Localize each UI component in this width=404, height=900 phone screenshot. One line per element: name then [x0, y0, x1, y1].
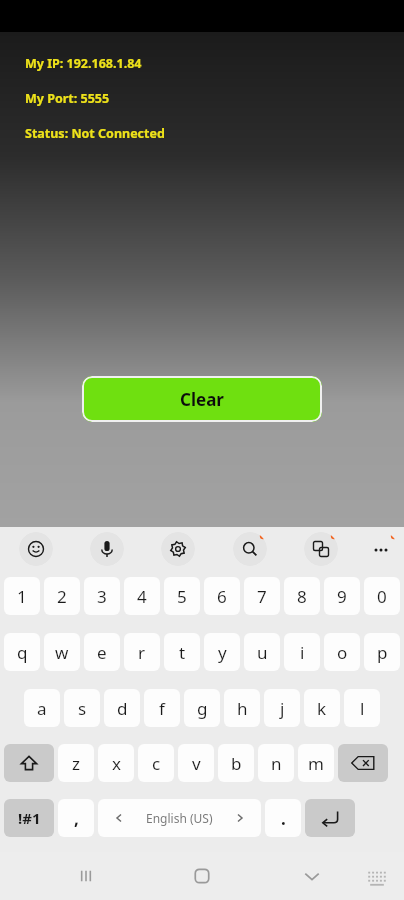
staticText: z — [72, 752, 80, 775]
button[interactable]: c — [138, 744, 174, 782]
button[interactable]: Recent apps — [74, 864, 98, 888]
button[interactable]: y — [204, 633, 240, 671]
button[interactable]: Change keyboard — [366, 866, 388, 888]
button[interactable]: f — [144, 689, 180, 727]
staticText: 4 — [137, 585, 147, 608]
button[interactable]: More options — [364, 532, 398, 566]
staticText: 2 — [57, 585, 67, 608]
staticText: My IP: 192.168.1.84 — [25, 55, 142, 72]
button[interactable]: r — [124, 633, 160, 671]
staticText: u — [257, 641, 268, 664]
button[interactable]: 1 — [4, 577, 40, 615]
button[interactable]: 6 — [204, 577, 240, 615]
staticText: e — [97, 641, 107, 664]
button[interactable]: x — [98, 744, 134, 782]
button[interactable]: s — [64, 689, 100, 727]
button[interactable]: h — [224, 689, 260, 727]
button[interactable]: a — [24, 689, 60, 727]
button[interactable]: b — [218, 744, 254, 782]
button[interactable]: 0 — [364, 577, 400, 615]
button[interactable]: d — [104, 689, 140, 727]
button[interactable]: q — [4, 633, 40, 671]
staticText: i — [300, 641, 305, 664]
staticText: , — [74, 807, 79, 830]
button[interactable]: j — [264, 689, 300, 727]
button[interactable]: 9 — [324, 577, 360, 615]
staticText: Clear — [180, 388, 224, 411]
staticText: l — [360, 697, 365, 720]
button[interactable]: 4 — [124, 577, 160, 615]
staticText: j — [280, 697, 285, 720]
staticText: n — [271, 752, 282, 775]
staticText: g — [197, 697, 208, 720]
staticText: v — [192, 752, 201, 775]
button[interactable]: Hide keyboard — [300, 864, 324, 888]
staticText: y — [218, 641, 227, 664]
staticText: 3 — [97, 585, 107, 608]
staticText: My Port: 5555 — [25, 90, 110, 107]
button[interactable]: English (US) — [98, 799, 261, 837]
button[interactable]: p — [364, 633, 400, 671]
button[interactable]: i — [284, 633, 320, 671]
button[interactable]: z — [58, 744, 94, 782]
button[interactable]: Enter — [305, 799, 355, 837]
button[interactable]: o — [324, 633, 360, 671]
staticText: 8 — [297, 585, 307, 608]
button[interactable]: t — [164, 633, 200, 671]
staticText: b — [231, 752, 242, 775]
staticText: 9 — [337, 585, 347, 608]
staticText: c — [152, 752, 161, 775]
button[interactable]: Search — [233, 532, 267, 566]
staticText: r — [138, 641, 146, 664]
staticText: a — [37, 697, 47, 720]
button[interactable]: . — [265, 799, 301, 837]
button[interactable]: n — [258, 744, 294, 782]
button[interactable]: l — [344, 689, 380, 727]
staticText: q — [17, 641, 28, 664]
button[interactable]: Shift — [4, 744, 54, 782]
button[interactable]: m — [298, 744, 334, 782]
button[interactable]: e — [84, 633, 120, 671]
button[interactable]: u — [244, 633, 280, 671]
staticText: x — [112, 752, 121, 775]
staticText: k — [317, 697, 327, 720]
button[interactable]: 5 — [164, 577, 200, 615]
button[interactable]: 3 — [84, 577, 120, 615]
button[interactable]: Backspace — [338, 744, 388, 782]
button[interactable]: 7 — [244, 577, 280, 615]
staticText: Status: Not Connected — [25, 125, 165, 142]
button[interactable]: , — [58, 799, 94, 837]
staticText: English (US) — [146, 810, 213, 826]
staticText: h — [237, 697, 248, 720]
staticText: o — [337, 641, 348, 664]
staticText: . — [281, 807, 286, 830]
staticText: f — [159, 697, 165, 720]
button[interactable]: !#1 — [4, 799, 54, 837]
button[interactable]: 8 — [284, 577, 320, 615]
button[interactable]: 2 — [44, 577, 80, 615]
button[interactable]: w — [44, 633, 80, 671]
staticText: p — [377, 641, 388, 664]
button[interactable]: Translate — [304, 532, 338, 566]
staticText: m — [308, 752, 324, 775]
button[interactable]: Clear — [82, 376, 322, 422]
staticText: w — [55, 641, 69, 664]
button[interactable]: Home — [190, 864, 214, 888]
staticText: !#1 — [18, 808, 41, 828]
staticText: d — [117, 697, 128, 720]
button[interactable]: Voice input — [90, 532, 124, 566]
staticText: s — [78, 697, 87, 720]
button[interactable]: v — [178, 744, 214, 782]
button[interactable]: k — [304, 689, 340, 727]
staticText: 6 — [217, 585, 227, 608]
staticText: 7 — [257, 585, 267, 608]
staticText: 5 — [177, 585, 187, 608]
button[interactable]: Keyboard settings — [161, 532, 195, 566]
staticText: 0 — [377, 585, 387, 608]
button[interactable]: Emoji — [19, 532, 53, 566]
staticText: t — [179, 641, 186, 664]
staticText: 1 — [17, 585, 27, 608]
button[interactable]: g — [184, 689, 220, 727]
